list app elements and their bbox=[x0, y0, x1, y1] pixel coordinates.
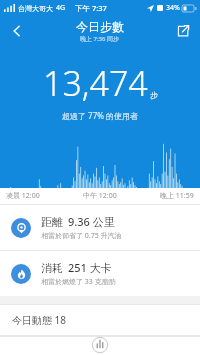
staticText: 9.36 公里 bbox=[68, 214, 115, 229]
staticText: 晚上 7:36 同步 bbox=[80, 35, 120, 43]
staticText: 相當於燃燒了 33 克脂肪 bbox=[41, 277, 116, 287]
staticText: 251 大卡 bbox=[68, 260, 112, 275]
staticText: 4G bbox=[56, 3, 66, 13]
staticText: 步 bbox=[150, 90, 158, 100]
button[interactable]: 統計 bbox=[70, 337, 130, 355]
staticText: 今日步數 bbox=[76, 19, 124, 34]
staticText: 台灣大哥大 bbox=[18, 4, 53, 13]
button[interactable]: Calories bbox=[0, 251, 200, 296]
staticText: 凌晨 12:00 bbox=[6, 191, 40, 201]
button[interactable]: Back bbox=[0, 16, 34, 46]
staticText: 下午 7:37 bbox=[75, 3, 107, 13]
staticText: 超過了 77% 的使用者 bbox=[62, 110, 138, 121]
other: Calories bbox=[11, 264, 31, 284]
button[interactable]: Distance bbox=[0, 205, 200, 250]
staticText: 晚上 11:59 bbox=[160, 191, 194, 201]
staticText: 13,474 bbox=[43, 60, 148, 106]
staticText: 距離 bbox=[41, 215, 63, 229]
staticText: 相當於節省了 0.75 升汽油 bbox=[41, 231, 122, 241]
button[interactable]: Share bbox=[166, 16, 200, 46]
staticText: 34% bbox=[166, 3, 180, 13]
staticText: 今日動態 18 bbox=[12, 313, 67, 327]
staticText: 消耗 bbox=[41, 261, 63, 275]
staticText: 中午 12:00 bbox=[83, 191, 117, 201]
other: Distance bbox=[11, 218, 31, 238]
